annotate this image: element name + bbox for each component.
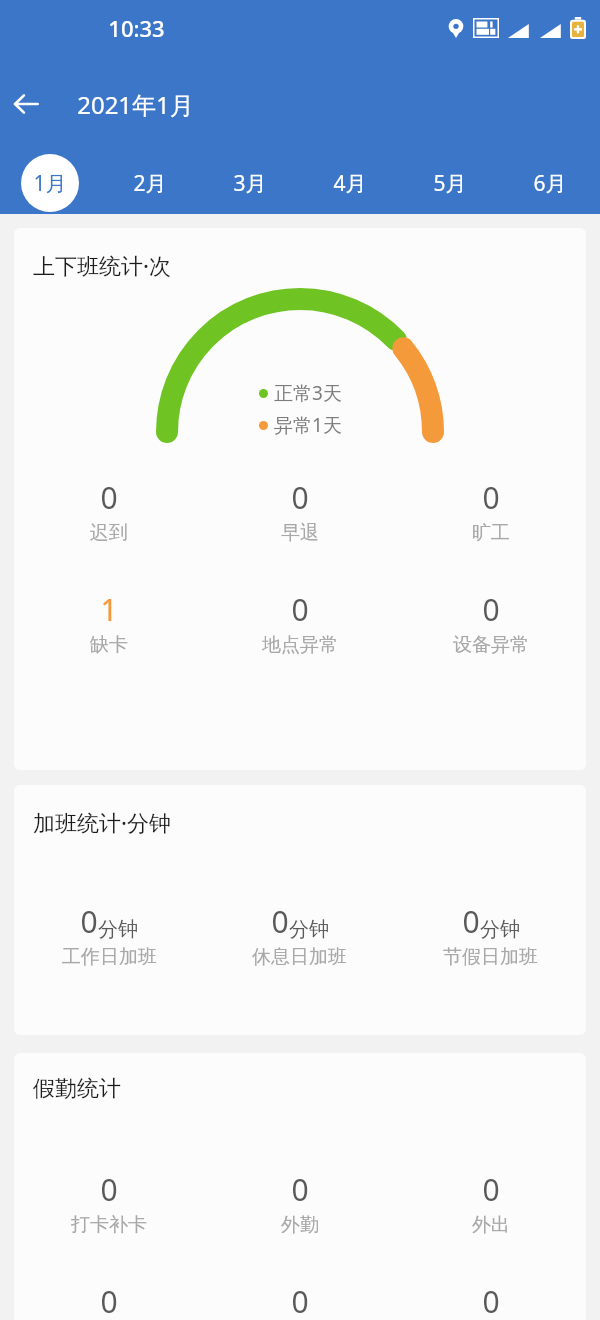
staticText: 0 [482, 1169, 500, 1210]
staticText: 0 [482, 589, 500, 630]
staticText: 3月 [233, 169, 267, 198]
staticText: 5月 [433, 169, 467, 198]
staticText: 10:33 [108, 13, 165, 43]
staticText: 正常3天 [274, 380, 342, 406]
staticText: 分钟 [289, 917, 329, 942]
staticText: 0 [462, 901, 480, 942]
staticText: 0 [271, 901, 289, 942]
staticText: 0 [100, 1281, 118, 1320]
button[interactable]: 0 [395, 901, 586, 969]
staticText: 0 [482, 477, 500, 518]
button[interactable]: 0 [204, 477, 395, 545]
staticText: 2021年1月 [77, 88, 194, 121]
button[interactable]: 0 [395, 589, 586, 657]
staticText: 0 [291, 589, 309, 630]
staticText: 上下班统计·次 [33, 250, 171, 280]
button[interactable]: 0 [204, 901, 395, 969]
staticText: 加班统计·分钟 [33, 807, 171, 837]
button[interactable]: 0 [395, 1169, 586, 1237]
button[interactable]: 5月 [400, 152, 500, 214]
staticText: 0 [291, 477, 309, 518]
staticText: 1月 [33, 169, 67, 198]
staticText: 分钟 [480, 917, 520, 942]
staticText: 6月 [533, 169, 567, 198]
staticText: 1 [100, 589, 118, 630]
staticText: 0 [100, 477, 118, 518]
staticText: 分钟 [98, 917, 138, 942]
staticText: 休息日加班 [252, 945, 347, 969]
staticText: 0 [80, 901, 98, 942]
staticText: 地点异常 [262, 633, 338, 657]
staticText: 2月 [133, 169, 167, 198]
button[interactable]: 3月 [200, 152, 300, 214]
button[interactable]: 2月 [100, 152, 200, 214]
staticText: 节假日加班 [443, 945, 538, 969]
staticText: 外勤 [281, 1213, 319, 1237]
staticText: 外出 [472, 1213, 510, 1237]
staticText: 0 [100, 1169, 118, 1210]
staticText: 早退 [281, 521, 319, 545]
staticText: 0 [482, 1281, 500, 1320]
button[interactable]: 0 [14, 477, 204, 545]
button[interactable]: 0 [204, 1169, 395, 1237]
staticText: 迟到 [90, 521, 128, 545]
staticText: 假勤统计 [33, 1075, 121, 1103]
staticText: 缺卡 [90, 633, 128, 657]
button[interactable]: 4月 [300, 152, 400, 214]
staticText: 设备异常 [453, 633, 529, 657]
button[interactable]: 0 [395, 477, 586, 545]
staticText: 工作日加班 [62, 945, 157, 969]
button[interactable]: 0 [14, 1169, 204, 1237]
button[interactable]: 1月 [0, 152, 100, 214]
button[interactable]: 0 [14, 901, 204, 969]
button[interactable]: 0 [204, 589, 395, 657]
staticText: 打卡补卡 [71, 1213, 147, 1237]
staticText: 0 [291, 1281, 309, 1320]
button[interactable]: 6月 [500, 152, 600, 214]
staticText: 0 [291, 1169, 309, 1210]
button[interactable]: Back [0, 78, 52, 130]
staticText: 异常1天 [274, 412, 342, 438]
staticText: 4月 [333, 169, 367, 198]
staticText: 旷工 [472, 521, 510, 545]
button[interactable]: 1 [14, 589, 204, 657]
